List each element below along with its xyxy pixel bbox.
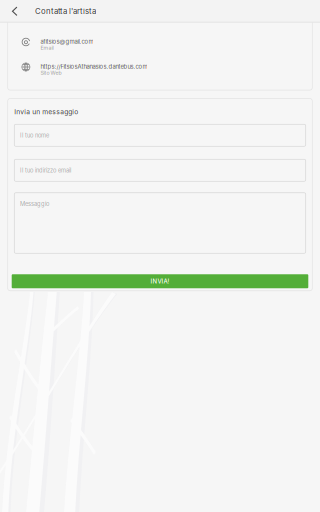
button[interactable]: INVIA! [12, 274, 308, 288]
staticText: Contatta l'artista [35, 7, 96, 16]
staticText: Il tuo nome [20, 132, 49, 139]
staticText: https://FitsiosAthanasios.dantebus.com [40, 63, 147, 70]
button[interactable]: Il tuo nome [14, 124, 306, 146]
staticText: Email [40, 45, 53, 51]
staticText: Sito Web [40, 70, 61, 76]
staticText: Messaggio [20, 201, 49, 207]
staticText: Il tuo indirizzo email [20, 167, 71, 174]
button[interactable]: afitsios@gmail.com [8, 32, 312, 57]
staticText: INVIA! [150, 278, 169, 285]
button[interactable]: https://FitsiosAthanasios.dantebus.com [8, 57, 312, 82]
button[interactable]: Indietro [0, 0, 26, 22]
staticText: afitsios@gmail.com [40, 38, 93, 45]
staticText: Invia un messaggio [14, 108, 78, 116]
button[interactable]: Il tuo indirizzo email [14, 159, 306, 181]
button[interactable]: Messaggio [14, 193, 306, 253]
